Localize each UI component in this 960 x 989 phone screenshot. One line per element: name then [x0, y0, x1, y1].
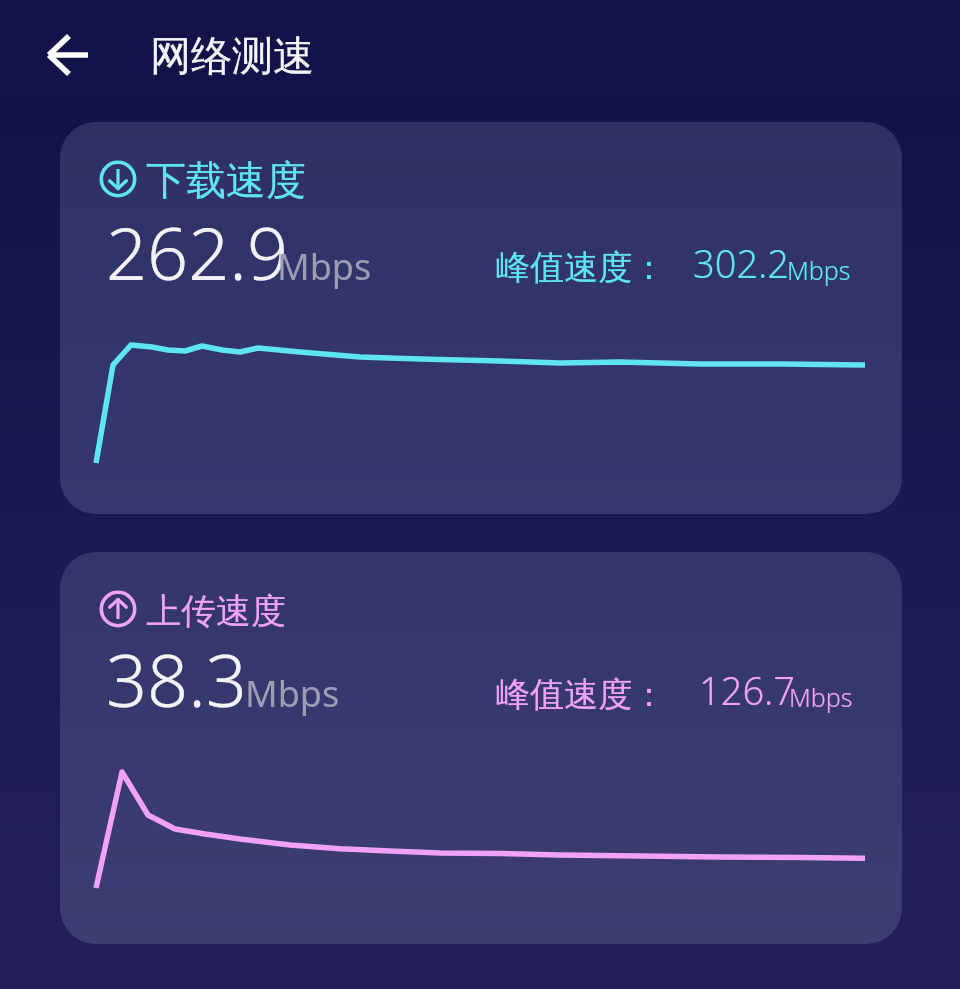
staticText: 峰值速度： — [496, 246, 666, 289]
staticText: 上传速度 — [146, 589, 286, 633]
staticText: 网络测速 — [150, 31, 314, 83]
staticText: Mbps — [789, 680, 853, 714]
staticText: 302.2 — [693, 237, 790, 289]
button[interactable]: Back — [26, 22, 92, 88]
button[interactable]: 上传速度 — [60, 552, 902, 944]
staticText: 38.3 — [106, 630, 247, 728]
staticText: 峰值速度： — [496, 673, 666, 716]
button[interactable]: 下载速度 — [60, 122, 902, 514]
staticText: 下载速度 — [146, 155, 306, 205]
staticText: Mbps — [245, 669, 340, 718]
staticText: Mbps — [277, 242, 372, 291]
staticText: Mbps — [787, 253, 851, 287]
staticText: 126.7 — [699, 664, 796, 716]
staticText: 262.9 — [106, 203, 289, 301]
